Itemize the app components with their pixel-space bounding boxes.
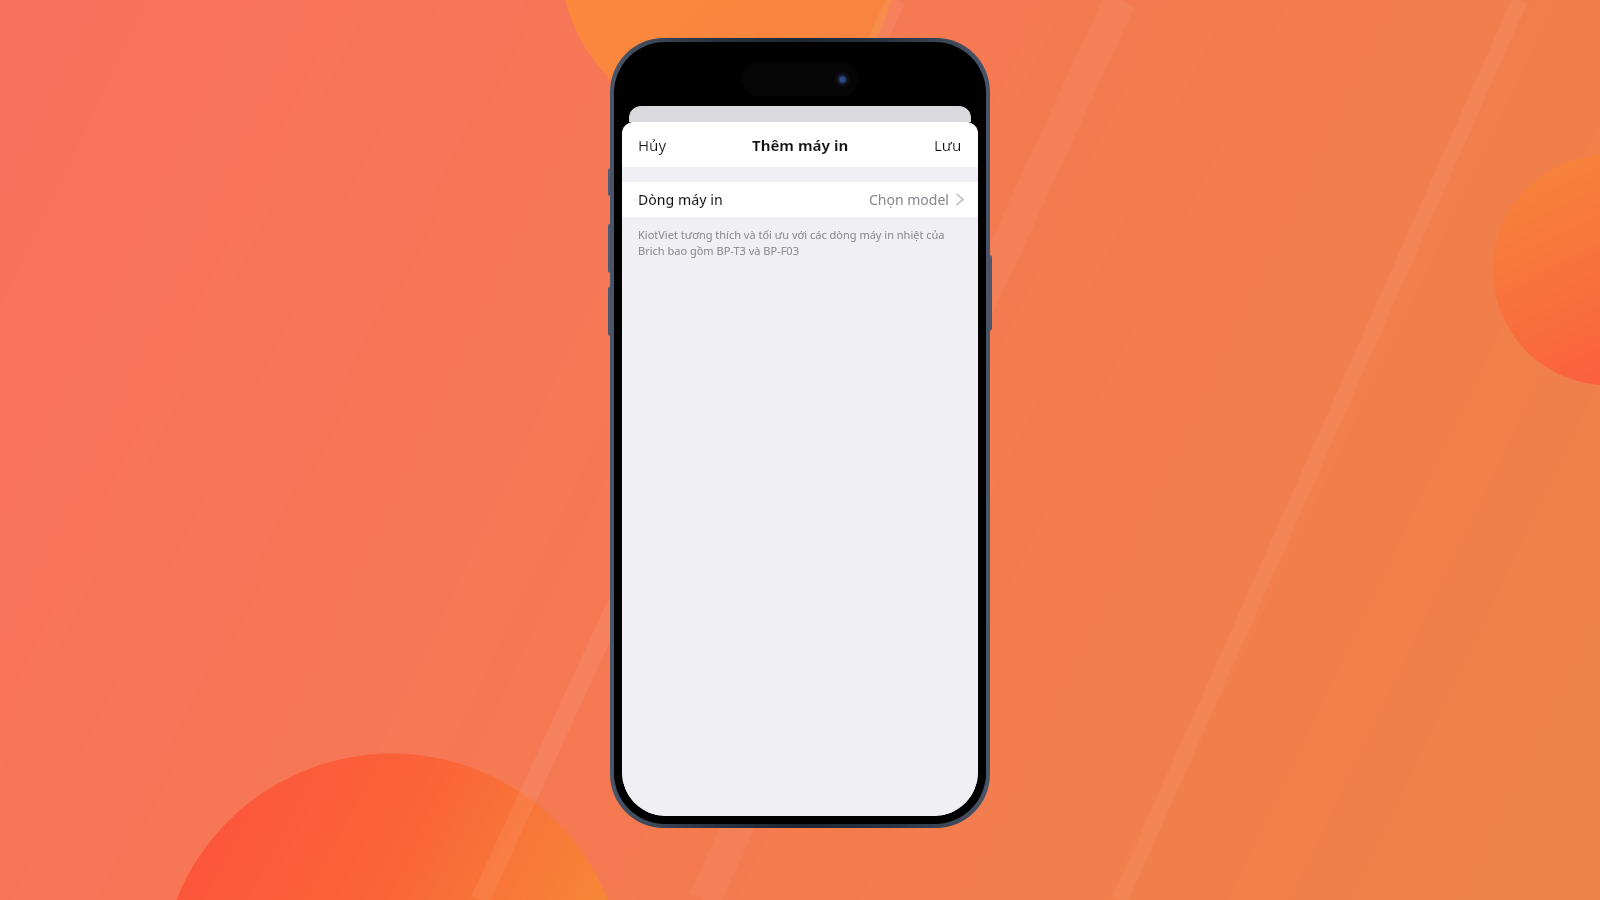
other: Chọn model — [956, 193, 964, 206]
staticText: KiotViet tương thích và tối ưu với các d… — [638, 227, 962, 259]
button[interactable]: Lưu — [918, 127, 978, 163]
button[interactable]: Dòng máy in — [622, 182, 978, 217]
staticText: Chọn model — [869, 190, 949, 209]
button[interactable]: Hủy — [622, 127, 683, 163]
staticText: Lưu — [934, 135, 962, 155]
staticText: Dòng máy in — [638, 190, 723, 209]
staticText: Thêm máy in — [752, 135, 849, 155]
staticText: Hủy — [638, 135, 667, 155]
